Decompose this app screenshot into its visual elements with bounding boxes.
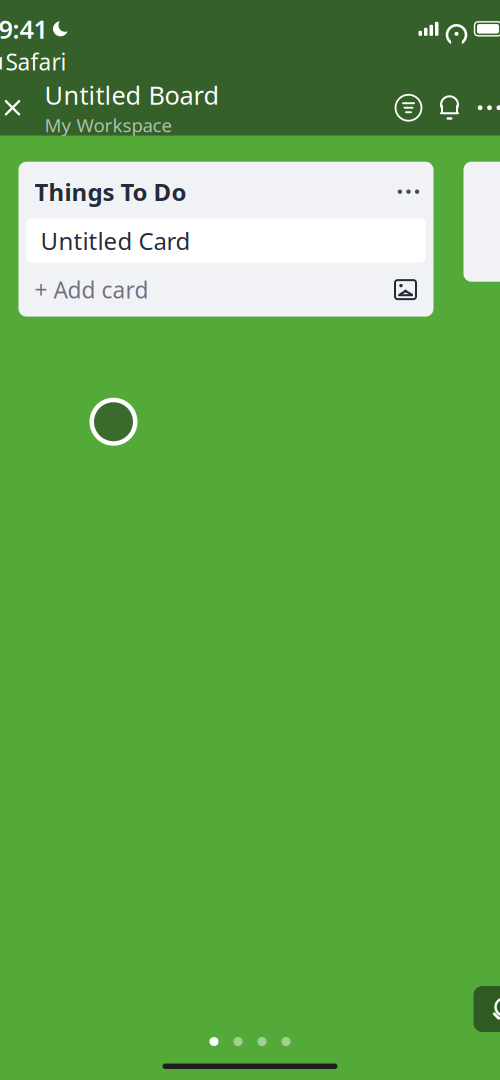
staticText: Untitled Card (40, 225, 190, 257)
staticText: 9:41 (0, 12, 47, 46)
button[interactable]: Filter cards (387, 86, 429, 130)
staticText: Safari (5, 47, 66, 77)
staticText: Things To Do (34, 176, 186, 208)
button[interactable]: ◀ (0, 46, 66, 80)
staticText: + Add card (34, 275, 148, 305)
staticText: My Workspace (44, 113, 172, 137)
button[interactable]: List actions (391, 177, 425, 207)
button[interactable]: Close board (0, 86, 34, 130)
button[interactable]: Untitled Card (26, 219, 425, 263)
button[interactable]: More options (469, 86, 500, 130)
button[interactable]: Zoom out (473, 986, 500, 1032)
button[interactable]: Notifications (429, 86, 469, 130)
staticText: Untitled Board (44, 78, 219, 112)
button[interactable]: + Add card (18, 263, 433, 317)
staticText: ◀ (0, 52, 1, 72)
